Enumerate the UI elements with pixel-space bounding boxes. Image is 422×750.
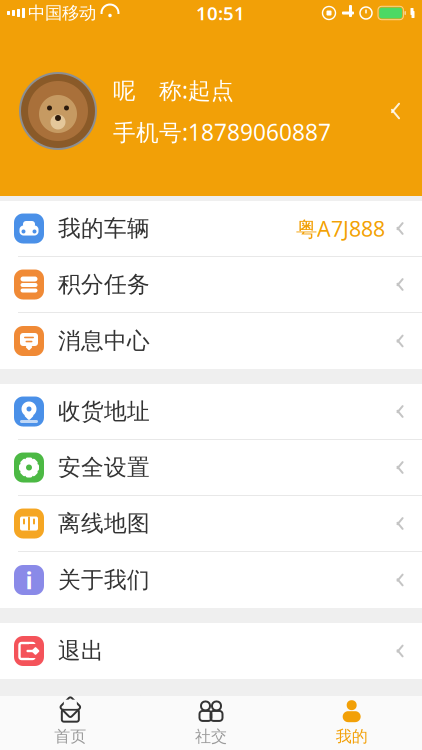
button[interactable]: 离线地图 (0, 496, 422, 552)
button[interactable]: i (0, 552, 422, 608)
button[interactable]: 退出 (0, 623, 422, 679)
staticText: 我的车辆 (58, 215, 150, 242)
button[interactable]: 积分任务 (0, 257, 422, 313)
staticText: 10:51 (196, 1, 245, 25)
button[interactable]: 呢 称:起点 (0, 26, 422, 196)
staticText: 首页 (54, 727, 86, 746)
button[interactable]: 我的 (281, 695, 422, 750)
staticText: i (25, 564, 32, 596)
staticText: 手机号:18789060887 (113, 117, 331, 147)
staticText: 我的 (336, 727, 368, 746)
staticText: 收货地址 (58, 398, 150, 425)
staticText: 粤A7J888 (296, 214, 385, 243)
staticText: 退出 (58, 637, 104, 665)
staticText: 积分任务 (58, 271, 150, 298)
button[interactable]: 社交 (141, 695, 281, 750)
staticText: 社交 (195, 727, 227, 746)
staticText: 中国移动 (28, 2, 96, 24)
staticText: 关于我们 (58, 566, 150, 594)
button[interactable]: 安全设置 (0, 440, 422, 496)
staticText: 消息中心 (58, 327, 150, 355)
staticText: 安全设置 (58, 454, 150, 481)
staticText: 离线地图 (58, 510, 150, 537)
button[interactable]: 首页 (0, 695, 141, 750)
staticText: 呢 称:起点 (113, 75, 234, 105)
button[interactable]: 消息中心 (0, 313, 422, 369)
button[interactable]: 我的车辆 (0, 201, 422, 257)
button[interactable]: 收货地址 (0, 384, 422, 440)
